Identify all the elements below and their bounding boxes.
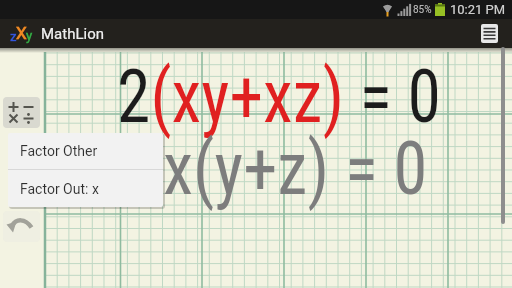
- staticText: 10:21 PM: [450, 2, 506, 17]
- button[interactable]: [3, 211, 40, 242]
- button[interactable]: [3, 97, 40, 128]
- button[interactable]: Factor Other: [8, 133, 163, 169]
- button[interactable]: Factor Out: x: [8, 170, 163, 207]
- staticText: Factor Out: x: [20, 181, 99, 197]
- staticText: X: [16, 23, 27, 43]
- staticText: Factor Other: [20, 143, 98, 159]
- staticText: x(y+z) = 0: [163, 125, 428, 212]
- staticText: 85%: [413, 4, 432, 16]
- staticText: z: [10, 29, 17, 44]
- button[interactable]: [481, 24, 498, 43]
- staticText: y: [26, 28, 33, 43]
- staticText: 2(xy+xz) = 0: [117, 53, 441, 140]
- staticText: MathLion: [41, 25, 104, 43]
